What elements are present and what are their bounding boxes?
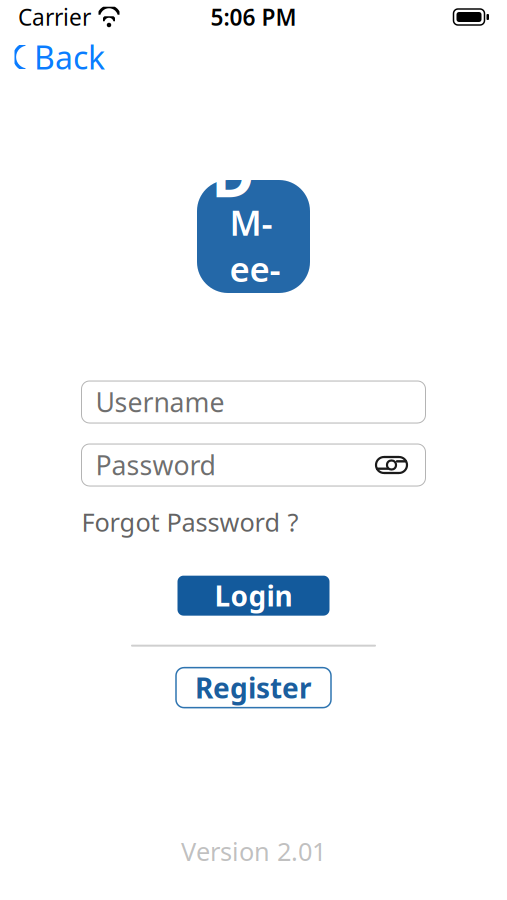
staticText: Forgot Password ? xyxy=(81,505,298,539)
button[interactable]: Show password xyxy=(371,448,411,482)
staticText: Meets xyxy=(229,199,280,337)
staticText: Register xyxy=(195,669,312,706)
staticText: D xyxy=(211,135,254,213)
staticText: Back xyxy=(34,36,105,78)
staticText: Carrier xyxy=(18,2,91,32)
button[interactable]: Back xyxy=(0,30,119,84)
staticText: 5:06 PM xyxy=(210,2,296,32)
button[interactable]: Login xyxy=(177,576,329,616)
staticText: ... xyxy=(280,160,295,183)
staticText: Username xyxy=(95,384,224,420)
staticText: Login xyxy=(214,577,292,614)
button[interactable]: Forgot Password ? xyxy=(81,500,306,544)
staticText: Version 2.01 xyxy=(181,834,326,868)
button[interactable]: Register xyxy=(176,668,331,708)
staticText: Password xyxy=(95,447,215,483)
